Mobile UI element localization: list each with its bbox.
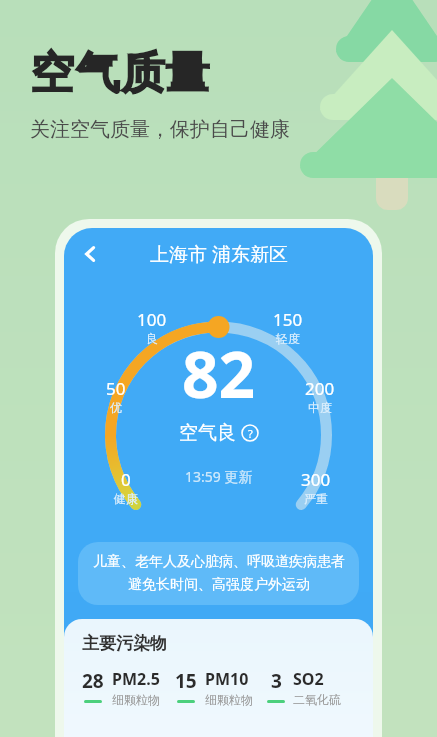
staticText: 关注空气质量，保护自己健康 <box>30 117 290 142</box>
button[interactable]: 28 <box>82 668 175 707</box>
staticText: 0 <box>121 468 131 491</box>
staticText: PM2.5 <box>112 668 160 690</box>
staticText: PM10 <box>205 668 249 690</box>
staticText: 中度 <box>308 400 332 415</box>
staticText: 82 <box>182 330 256 417</box>
staticText: 50 <box>106 377 126 400</box>
staticText: 儿童、老年人及心脏病、呼吸道疾病患者 <box>93 553 345 571</box>
staticText: SO2 <box>293 668 324 690</box>
staticText: 健康 <box>114 491 138 506</box>
staticText: 150 <box>273 308 303 331</box>
staticText: 细颗粒物 <box>112 692 160 707</box>
button[interactable]: Back <box>70 234 110 274</box>
staticText: 3 <box>271 668 282 694</box>
staticText: 100 <box>137 308 167 331</box>
staticText: 二氧化硫 <box>293 692 341 707</box>
staticText: 主要污染物 <box>82 633 167 654</box>
staticText: 200 <box>305 377 335 400</box>
staticText: 细颗粒物 <box>205 692 253 707</box>
button[interactable]: 15 <box>175 668 267 707</box>
button[interactable]: Info <box>241 424 259 442</box>
button[interactable]: 儿童、老年人及心脏病、呼吸道疾病患者 <box>78 542 359 605</box>
staticText: 严重 <box>304 491 328 506</box>
staticText: 优 <box>110 400 122 415</box>
button[interactable]: 3 <box>267 668 359 707</box>
staticText: 空气质量 <box>30 46 210 101</box>
staticText: 避免长时间、高强度户外运动 <box>128 576 310 594</box>
staticText: 空气良 <box>179 421 236 445</box>
staticText: 上海市 浦东新区 <box>150 241 288 267</box>
staticText: 15 <box>175 668 197 694</box>
staticText: 13:59 更新 <box>185 467 253 486</box>
staticText: 28 <box>82 668 104 694</box>
staticText: 轻度 <box>276 331 300 346</box>
staticText: ? <box>248 426 253 441</box>
staticText: 良 <box>146 331 158 346</box>
staticText: 300 <box>301 468 331 491</box>
